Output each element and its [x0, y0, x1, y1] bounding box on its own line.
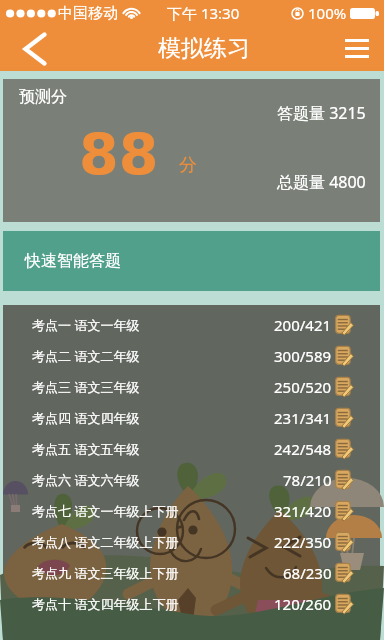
staticText: 200/421 [274, 315, 332, 335]
staticText: 快速智能答题 [25, 251, 121, 271]
staticText: 考点六 语文六年级 [32, 471, 140, 489]
staticText: 100% [308, 3, 347, 23]
button[interactable]: Back [0, 26, 48, 71]
staticText: 考点三 语文三年级 [32, 378, 140, 396]
button[interactable]: 考点四 语文四年级 [3, 402, 380, 433]
staticText: 88 [79, 122, 159, 188]
button[interactable]: 快速智能答题 [3, 231, 380, 291]
button[interactable]: 考点八 语文二年级上下册 [3, 526, 380, 557]
staticText: 68/230 [283, 563, 332, 583]
button[interactable]: 考点五 语文五年级 [3, 433, 380, 464]
button[interactable]: 考点二 语文二年级 [3, 340, 380, 371]
staticText: 分 [179, 154, 197, 177]
staticText: 中国移动 [58, 4, 118, 23]
button[interactable]: Menu [336, 26, 384, 71]
staticText: 考点八 语文二年级上下册 [32, 533, 179, 551]
staticText: 考点一 语文一年级 [32, 316, 140, 334]
staticText: 78/210 [283, 470, 332, 490]
button[interactable]: 考点三 语文三年级 [3, 371, 380, 402]
staticText: 考点五 语文五年级 [32, 440, 140, 458]
staticText: 250/520 [274, 377, 332, 397]
staticText: 答题量 3215 [277, 102, 366, 124]
staticText: 321/420 [274, 501, 332, 521]
staticText: 下午 13:30 [167, 3, 240, 23]
staticText: 考点四 语文四年级 [32, 409, 140, 427]
button[interactable]: 考点十 语文四年级上下册 [3, 588, 380, 619]
staticText: 231/341 [274, 408, 332, 428]
staticText: 模拟练习 [158, 34, 250, 63]
button[interactable]: 考点六 语文六年级 [3, 464, 380, 495]
staticText: 考点十 语文四年级上下册 [32, 595, 179, 613]
staticText: 120/260 [274, 594, 332, 614]
staticText: 总题量 4800 [277, 171, 366, 193]
staticText: 考点九 语文三年级上下册 [32, 564, 179, 582]
staticText: 242/548 [274, 439, 332, 459]
staticText: 300/589 [274, 346, 332, 366]
staticText: 222/350 [274, 532, 332, 552]
button[interactable]: 考点九 语文三年级上下册 [3, 557, 380, 588]
staticText: 考点七 语文一年级上下册 [32, 502, 179, 520]
staticText: 考点二 语文二年级 [32, 347, 140, 365]
button[interactable]: 考点一 语文一年级 [3, 309, 380, 340]
button[interactable]: 考点七 语文一年级上下册 [3, 495, 380, 526]
staticText: 预测分 [19, 87, 67, 107]
